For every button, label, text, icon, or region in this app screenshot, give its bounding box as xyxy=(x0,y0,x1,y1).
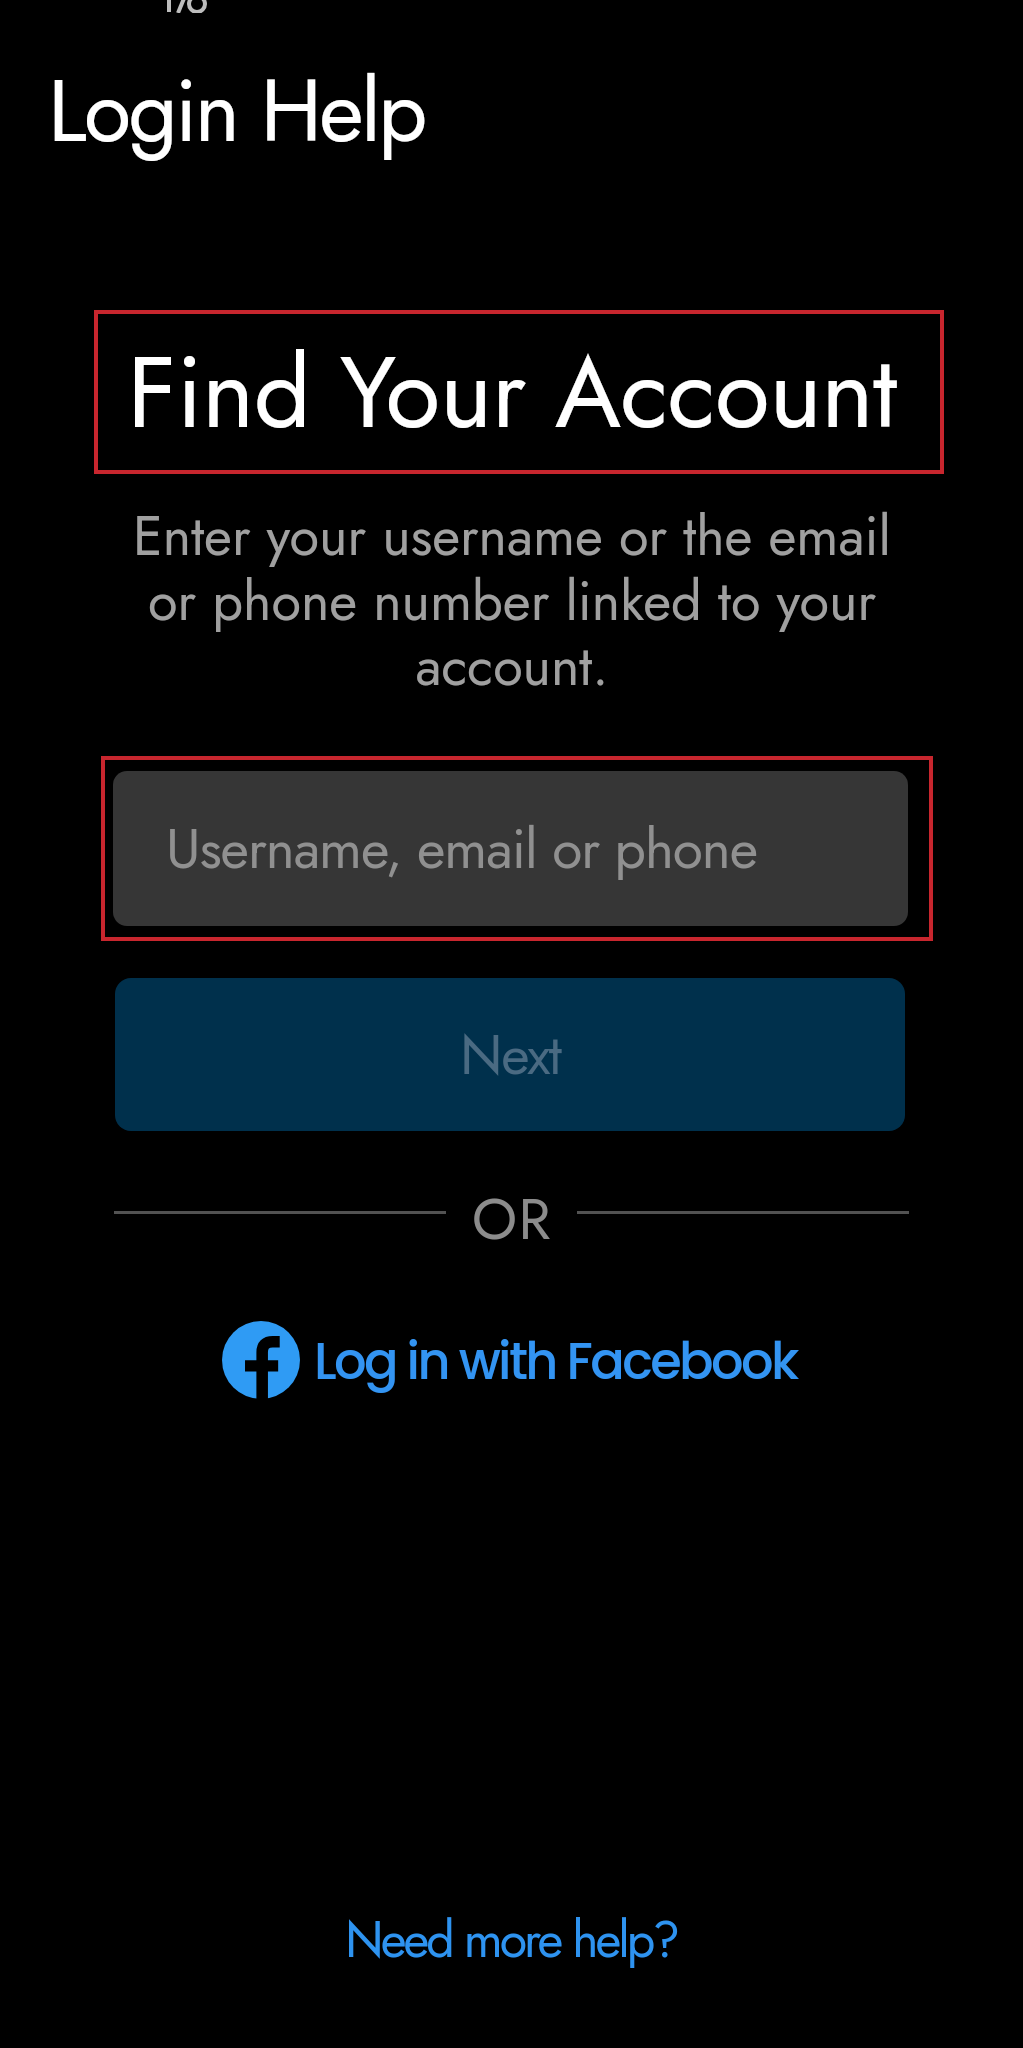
staticText: Enter your username or the email or phon… xyxy=(133,497,891,705)
staticText: Login Help xyxy=(48,49,425,173)
button[interactable]: Need more help? xyxy=(345,1903,678,1975)
button[interactable]: Log in with Facebook xyxy=(222,1321,797,1399)
staticText: Find Your Account xyxy=(127,320,897,465)
button[interactable]: Username, email or phone xyxy=(113,771,908,926)
staticText: Username, email or phone xyxy=(166,809,758,888)
staticText: OR xyxy=(472,1178,552,1260)
staticText: Next xyxy=(460,1015,561,1094)
button[interactable]: Next xyxy=(115,978,905,1131)
staticText: Log in with Facebook xyxy=(314,1325,797,1396)
